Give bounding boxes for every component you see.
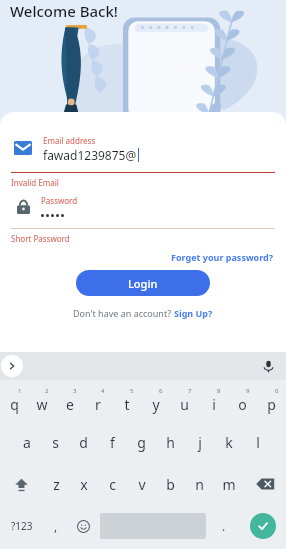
button[interactable]: b (156, 463, 185, 505)
button[interactable]: 5 (112, 380, 141, 421)
staticText: Email address (43, 135, 96, 146)
button[interactable]: Emoji (69, 505, 98, 547)
staticText: b (166, 475, 175, 494)
button[interactable]: , (43, 505, 69, 547)
staticText: p (267, 395, 276, 414)
staticText: u (180, 395, 189, 414)
staticText: 6 (159, 387, 163, 395)
button[interactable]: Voice input (258, 356, 278, 376)
staticText: a (23, 433, 31, 452)
staticText: fawad1239875@ (43, 147, 137, 163)
staticText: f (110, 433, 115, 452)
staticText: 3 (73, 387, 77, 395)
staticText: g (137, 433, 146, 452)
button[interactable]: 2 (28, 380, 56, 421)
staticText: Forget your password? (171, 251, 274, 263)
button[interactable]: Login (76, 270, 210, 296)
staticText: Invalid Email (11, 177, 59, 188)
button[interactable]: 0 (257, 380, 286, 421)
button[interactable]: x (70, 463, 98, 505)
staticText: k (225, 433, 233, 452)
button[interactable]: k (214, 421, 243, 463)
staticText: , (54, 518, 58, 534)
staticText: q (10, 395, 19, 414)
staticText: 4 (101, 387, 105, 395)
staticText: 2 (45, 387, 49, 395)
staticText: 8 (217, 387, 221, 395)
staticText: w (36, 395, 48, 414)
button[interactable]: Enter (250, 513, 276, 539)
button[interactable]: s (41, 421, 69, 463)
button[interactable]: 8 (199, 380, 228, 421)
button[interactable]: v (127, 463, 156, 505)
button[interactable]: j (185, 421, 214, 463)
staticText: i (212, 395, 216, 414)
staticText: y (152, 395, 160, 414)
button[interactable]: 7 (170, 380, 199, 421)
button[interactable]: . (208, 505, 239, 547)
button[interactable]: Sign Up? (174, 307, 213, 319)
staticText: z (53, 475, 60, 494)
staticText: e (66, 395, 74, 414)
button[interactable]: d (69, 421, 98, 463)
staticText: o (238, 395, 247, 414)
staticText: Don't have an account? (73, 307, 174, 319)
staticText: l (256, 433, 260, 452)
button[interactable]: h (156, 421, 185, 463)
button[interactable]: 6 (141, 380, 170, 421)
staticText: s (52, 433, 59, 452)
staticText: Short Password (11, 233, 70, 244)
staticText: x (80, 475, 88, 494)
staticText: Login (128, 276, 158, 291)
button[interactable]: Shift (0, 463, 42, 505)
button[interactable]: Backspace (243, 463, 286, 505)
staticText: h (166, 433, 175, 452)
staticText: 5 (130, 387, 134, 395)
staticText: v (138, 475, 146, 494)
button[interactable]: 3 (56, 380, 84, 421)
button[interactable]: l (243, 421, 272, 463)
staticText: . (222, 518, 226, 534)
button[interactable]: 4 (84, 380, 112, 421)
staticText: d (79, 433, 88, 452)
button[interactable]: g (127, 421, 156, 463)
button[interactable]: f (98, 421, 127, 463)
staticText: ?123 (11, 519, 33, 533)
button[interactable]: a (13, 421, 41, 463)
button[interactable]: m (214, 463, 243, 505)
button[interactable]: c (98, 463, 127, 505)
button[interactable]: z (42, 463, 70, 505)
button[interactable]: Forget your password? (0, 251, 274, 263)
button[interactable]: n (185, 463, 214, 505)
button[interactable]: ?123 (0, 505, 43, 547)
staticText: 0 (275, 387, 279, 395)
staticText: n (195, 475, 204, 494)
staticText: t (124, 395, 130, 414)
staticText: Password (41, 195, 78, 206)
staticText: r (95, 395, 101, 414)
staticText: Sign Up? (174, 307, 213, 319)
button[interactable]: 9 (228, 380, 257, 421)
staticText: 7 (188, 387, 192, 395)
staticText: j (198, 433, 202, 452)
staticText: Welcome Back! (10, 1, 118, 21)
button[interactable]: 1 (0, 380, 28, 421)
staticText: 9 (246, 387, 250, 395)
staticText: c (109, 475, 116, 494)
staticText: m (222, 475, 236, 494)
staticText: 1 (18, 387, 22, 395)
button[interactable]: Expand toolbar (1, 355, 23, 377)
